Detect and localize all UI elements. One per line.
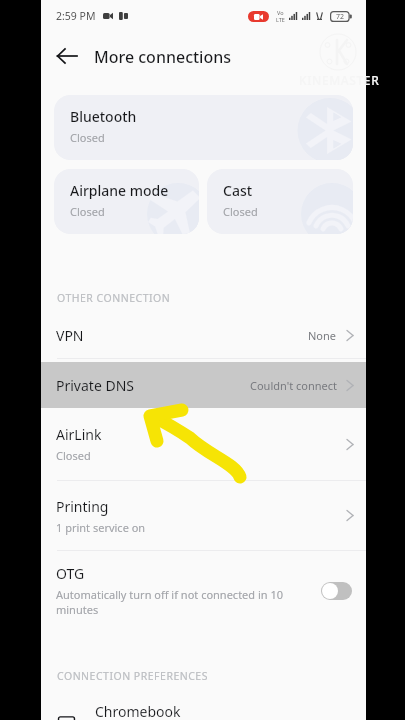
staticText: Printing: [56, 497, 109, 516]
staticText: Private DNS: [56, 376, 134, 395]
button[interactable]: Airplane mode: [54, 169, 199, 234]
button[interactable]: OTG: [41, 551, 366, 630]
staticText: CONNECTION PREFERENCES: [57, 669, 208, 683]
staticText: Vo: [277, 9, 284, 16]
button[interactable]: Bluetooth: [54, 95, 353, 160]
staticText: Closed: [56, 448, 91, 463]
button[interactable]: Cast: [207, 169, 353, 234]
staticText: Automatically turn off if not connected …: [56, 587, 323, 617]
button[interactable]: Printing: [41, 481, 366, 550]
staticText: AirLink: [56, 425, 102, 444]
staticText: 1 print service on: [56, 520, 146, 535]
button[interactable]: VPN: [41, 312, 366, 358]
button[interactable]: Back: [43, 32, 91, 80]
staticText: Closed: [70, 130, 105, 145]
staticText: Closed: [70, 204, 105, 219]
staticText: OTG: [56, 564, 85, 583]
staticText: Bluetooth: [70, 107, 137, 126]
staticText: KINEMASTER: [299, 72, 380, 88]
staticText: Chromebook: [95, 702, 181, 717]
staticText: None: [308, 328, 337, 343]
button[interactable]: Private DNS: [41, 362, 366, 408]
button[interactable]: AirLink: [41, 408, 366, 480]
staticText: Cast: [223, 181, 253, 200]
staticText: LTE: [276, 16, 285, 23]
staticText: Closed: [223, 204, 258, 219]
staticText: Airplane mode: [70, 181, 169, 200]
staticText: Couldn't connect: [250, 378, 337, 393]
staticText: VPN: [56, 326, 84, 345]
staticText: OTHER CONNECTION: [57, 291, 171, 305]
staticText: 2:59 PM: [56, 9, 96, 23]
staticText: More connections: [94, 46, 232, 68]
staticText: 72: [336, 12, 345, 22]
button[interactable]: Chromebook: [41, 705, 366, 720]
